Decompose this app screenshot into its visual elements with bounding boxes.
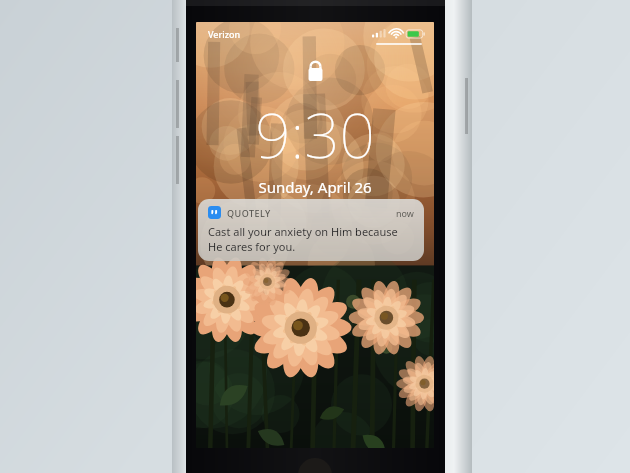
staticText: Cast all your anxiety on Him because He …: [208, 224, 414, 254]
other: Device locked: [307, 58, 324, 81]
other: Signal, Wi-Fi and battery status: [372, 27, 424, 41]
staticText: 9:30: [255, 92, 375, 176]
staticText: now: [396, 207, 414, 219]
staticText: Sunday, April 26: [258, 177, 372, 197]
staticText: Verizon: [208, 28, 241, 40]
button[interactable]: QUOTELY: [198, 199, 424, 261]
staticText: QUOTELY: [227, 207, 271, 219]
